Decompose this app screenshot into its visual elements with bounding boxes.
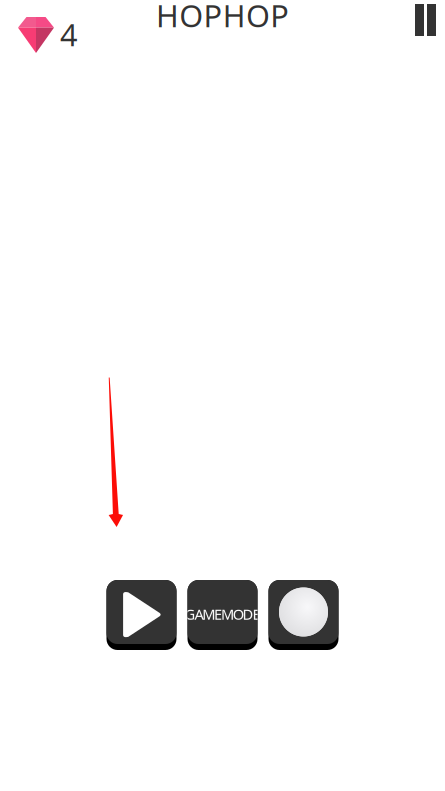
- button[interactable]: Game mode: [187, 580, 257, 650]
- staticText: HOPHOP: [156, 0, 289, 36]
- staticText: GAMEMODE: [184, 604, 260, 624]
- button[interactable]: Ball: [268, 580, 338, 650]
- button[interactable]: Pause: [409, 0, 442, 42]
- staticText: 4: [60, 14, 78, 55]
- button[interactable]: Play: [106, 580, 176, 650]
